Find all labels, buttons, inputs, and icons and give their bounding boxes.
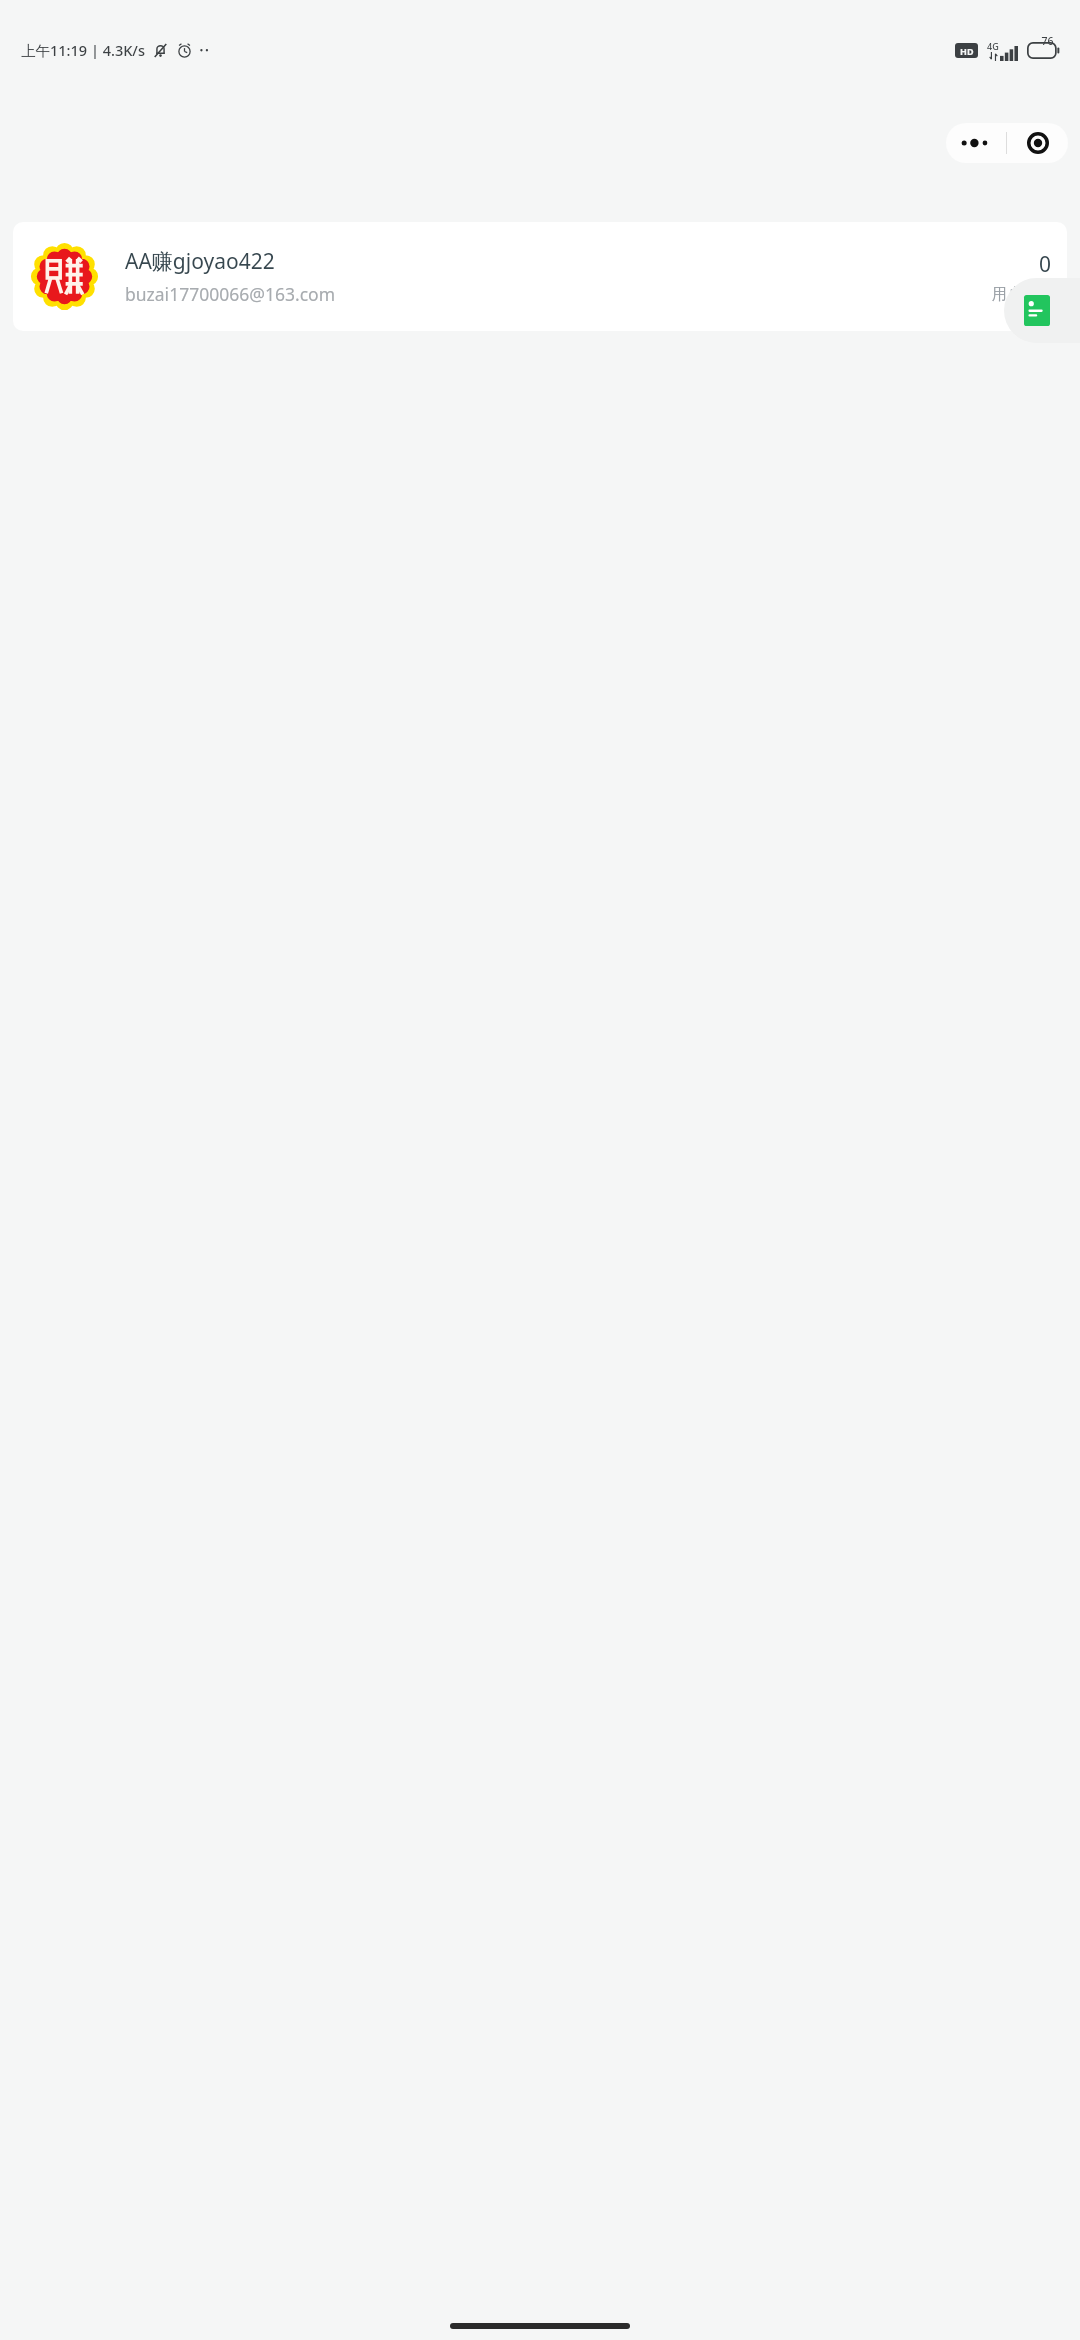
- staticText: 76: [1041, 34, 1054, 48]
- staticText: buzai17700066@163.com: [125, 282, 336, 306]
- staticText: 0: [1039, 250, 1052, 279]
- staticText: 用户总数: [992, 285, 1052, 304]
- staticText: 4G: [987, 40, 999, 52]
- button[interactable]: Open form: [1004, 278, 1080, 343]
- staticText: AA赚gjoyao422: [125, 247, 275, 276]
- button[interactable]: Close mini program: [1007, 123, 1068, 163]
- button[interactable]: AA赚gjoyao422: [13, 222, 1067, 331]
- staticText: 上午11:19 | 4.3K/s: [21, 40, 145, 60]
- staticText: HD: [960, 45, 974, 57]
- button[interactable]: More options: [946, 123, 1006, 163]
